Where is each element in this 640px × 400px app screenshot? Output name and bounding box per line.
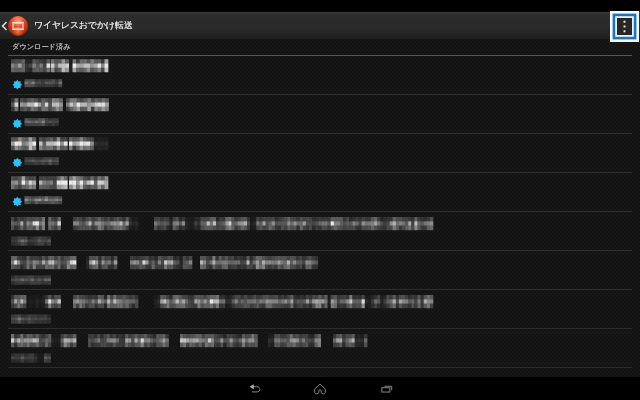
button[interactable] (0, 95, 640, 134)
button[interactable]: Back (227, 377, 281, 400)
button[interactable]: Home (293, 377, 347, 400)
button[interactable]: Recent apps (359, 377, 413, 400)
staticText: ワイヤレスおでかけ転送 (34, 20, 133, 31)
button[interactable] (0, 56, 640, 95)
button[interactable] (0, 212, 640, 251)
button[interactable]: ワイヤレスおでかけ転送 (0, 12, 640, 39)
staticText: ダウンロード済み (12, 42, 71, 51)
button[interactable] (0, 173, 640, 212)
button[interactable] (0, 251, 640, 290)
button[interactable] (0, 290, 640, 329)
button[interactable]: More options (610, 11, 639, 42)
button[interactable] (0, 329, 640, 368)
button[interactable] (0, 134, 640, 173)
